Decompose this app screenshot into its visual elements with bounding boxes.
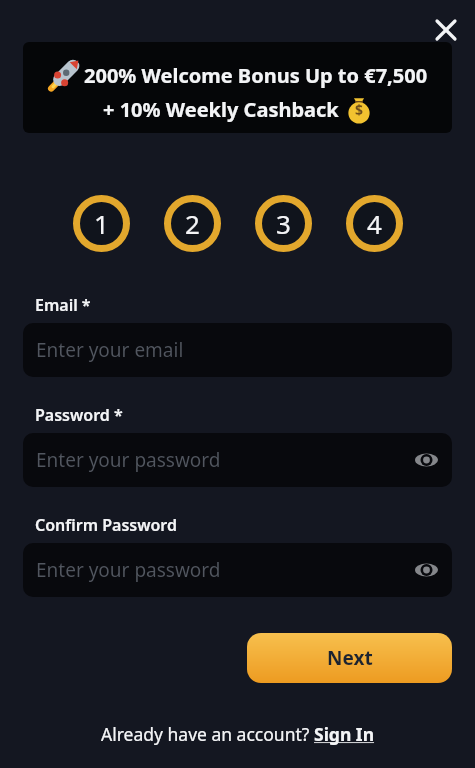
button[interactable]: Enter your password	[23, 543, 452, 597]
staticText: Email *	[35, 294, 91, 316]
button[interactable]: Enter your password	[23, 433, 452, 487]
staticText: Confirm Password	[35, 514, 177, 536]
button[interactable]: Sign In	[314, 722, 375, 746]
staticText: + 10% Weekly Cashback	[103, 96, 339, 123]
button[interactable]: Next	[247, 633, 452, 683]
staticText: 1	[94, 206, 109, 241]
staticText: Next	[327, 645, 373, 671]
staticText: Already have an account?	[101, 722, 314, 746]
staticText: 200% Welcome Bonus Up to €7,500	[84, 62, 428, 89]
staticText: $	[355, 100, 364, 119]
staticText: Enter your email	[36, 337, 184, 363]
button[interactable]: Enter your email	[23, 323, 452, 377]
staticText: 3	[276, 206, 291, 241]
staticText: 4	[367, 206, 382, 241]
button[interactable]	[430, 14, 462, 46]
staticText: 2	[185, 206, 200, 241]
staticText: Password *	[35, 404, 123, 426]
staticText: Enter your password	[36, 447, 221, 473]
staticText: Enter your password	[36, 557, 221, 583]
